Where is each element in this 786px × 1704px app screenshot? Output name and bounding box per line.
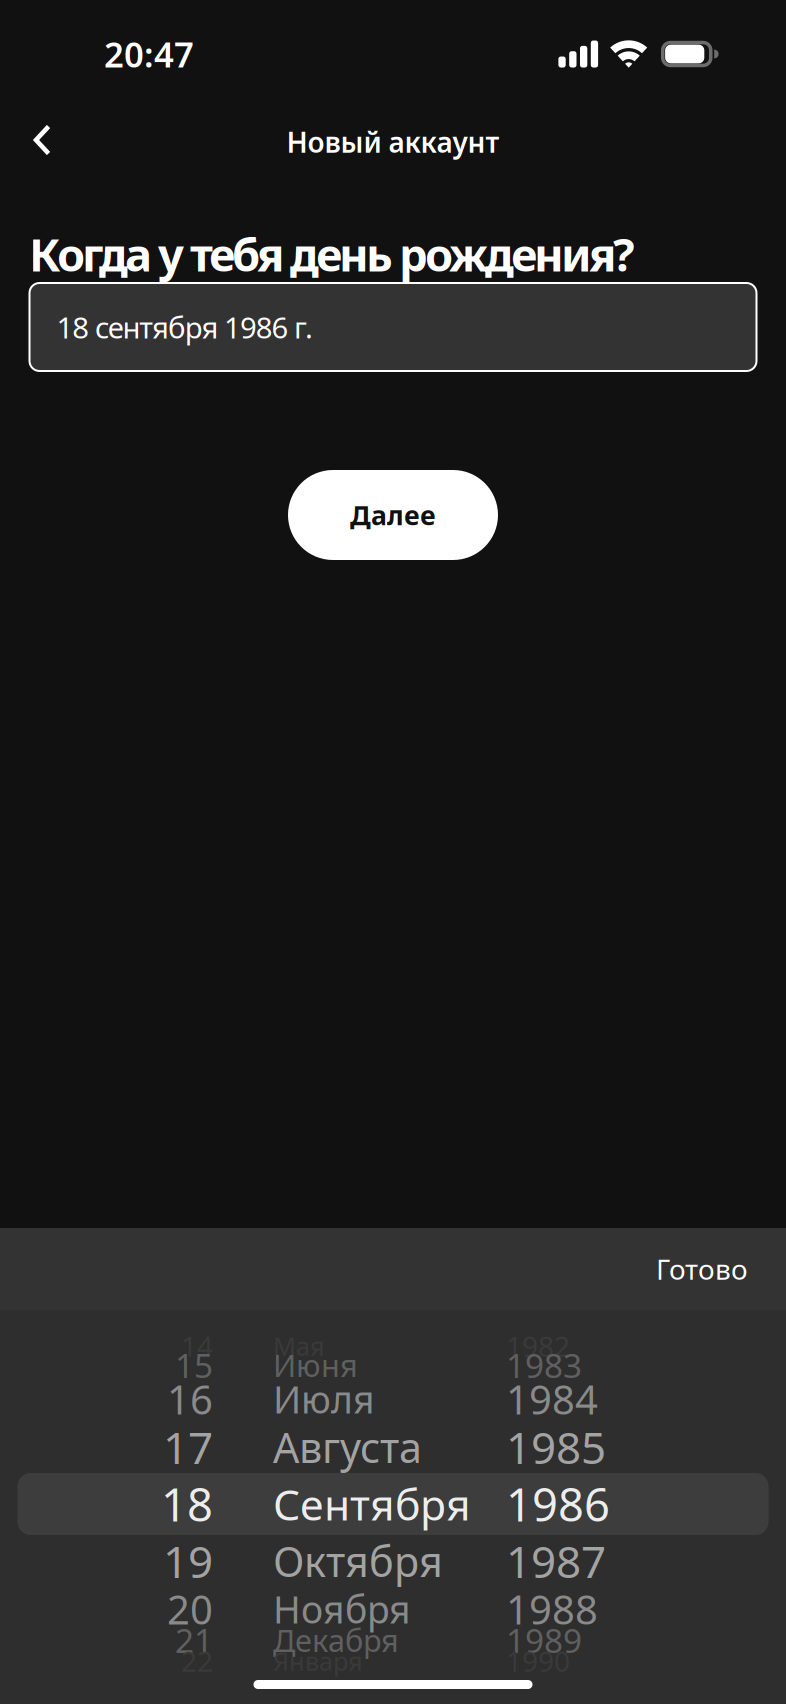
staticText: 1988 — [506, 1582, 598, 1635]
button[interactable]: Назад — [5, 102, 81, 178]
staticText: 18 сентября 1986 г. — [56, 307, 313, 346]
staticText: Июля — [273, 1374, 375, 1424]
staticText: 21 — [175, 1618, 213, 1662]
staticText: Мая — [273, 1329, 325, 1363]
staticText: 1986 — [506, 1474, 610, 1534]
staticText: Января — [273, 1644, 363, 1678]
staticText: 20 — [167, 1582, 213, 1635]
staticText: 1982 — [506, 1327, 570, 1365]
staticText: 1984 — [506, 1372, 598, 1425]
staticText: Августа — [273, 1420, 422, 1474]
staticText: 17 — [163, 1418, 213, 1476]
staticText: 20:47 — [104, 31, 194, 77]
staticText: 1990 — [506, 1642, 570, 1680]
button[interactable]: Далее — [288, 470, 498, 560]
staticText: Когда у тебя день рождения? — [29, 224, 635, 284]
staticText: Октября — [273, 1534, 443, 1588]
staticText: Готово — [656, 1250, 748, 1288]
staticText: 16 — [167, 1372, 213, 1425]
staticText: Сентября — [273, 1476, 471, 1532]
staticText: 1987 — [506, 1532, 606, 1590]
staticText: 1983 — [506, 1343, 582, 1387]
staticText: 14 — [181, 1327, 213, 1365]
staticText: 15 — [175, 1343, 213, 1387]
button[interactable]: Готово — [656, 1230, 786, 1308]
staticText: Новый аккаунт — [286, 123, 499, 161]
staticText: 18 — [161, 1474, 213, 1534]
staticText: Июня — [273, 1345, 358, 1385]
staticText: 19 — [163, 1532, 213, 1590]
button[interactable]: 18 сентября 1986 г. — [29, 283, 756, 371]
staticText: 1985 — [506, 1418, 606, 1476]
staticText: Далее — [350, 497, 436, 533]
staticText: Декабря — [273, 1620, 399, 1660]
staticText: Ноября — [273, 1584, 411, 1634]
staticText: 22 — [181, 1642, 213, 1680]
staticText: 1989 — [506, 1618, 582, 1662]
